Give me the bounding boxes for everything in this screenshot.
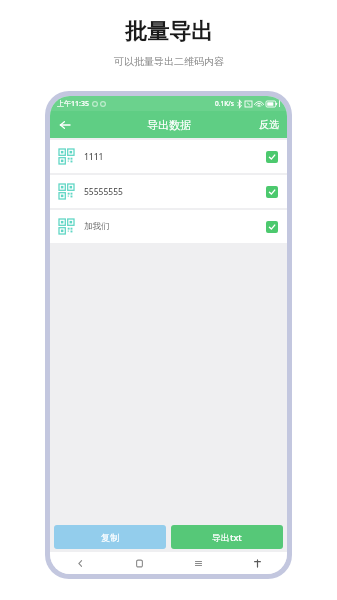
- staticText: 反选: [259, 118, 279, 131]
- staticText: 上午11:35: [57, 99, 89, 109]
- button[interactable]: 1111: [50, 140, 287, 173]
- button[interactable]: 已选中: [266, 151, 278, 163]
- staticText: 0.1K/s: [215, 99, 234, 108]
- button[interactable]: 反选: [251, 114, 287, 135]
- staticText: 加我们: [84, 221, 110, 232]
- button[interactable]: 已选中: [266, 186, 278, 198]
- staticText: 55555555: [84, 186, 123, 198]
- staticText: 批量导出: [125, 18, 213, 46]
- button[interactable]: 返回: [54, 114, 76, 136]
- button[interactable]: 导出txt: [171, 525, 283, 549]
- button[interactable]: 主页: [110, 552, 169, 574]
- staticText: 导出txt: [212, 531, 242, 543]
- button[interactable]: 加我们: [50, 210, 287, 243]
- staticText: 复制: [101, 532, 119, 543]
- button[interactable]: 55555555: [50, 175, 287, 208]
- button[interactable]: 后退: [50, 552, 110, 574]
- button[interactable]: 更多: [228, 552, 287, 574]
- button[interactable]: 复制: [54, 525, 166, 549]
- button[interactable]: 已选中: [266, 221, 278, 233]
- button[interactable]: 最近任务: [169, 552, 228, 574]
- staticText: 1111: [84, 151, 104, 163]
- staticText: 导出数据: [147, 118, 191, 132]
- staticText: 可以批量导出二维码内容: [114, 55, 224, 68]
